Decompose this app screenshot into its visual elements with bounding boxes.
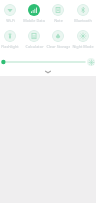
button[interactable]: Brightness slider [0,55,96,69]
button[interactable]: Bluetooth [71,4,95,23]
staticText: Bluetooth [74,18,92,23]
button[interactable]: Clear Storage [46,30,70,49]
staticText: Clear Storage [46,44,70,49]
staticText: Mobile Data [23,18,45,23]
button[interactable]: Expand quick settings [0,68,96,76]
staticText: Wi-Fi [6,18,15,23]
button[interactable]: Night Mode [71,30,95,49]
button[interactable]: Note [46,4,70,23]
button[interactable]: Wi-Fi [0,4,22,23]
staticText: Night Mode [72,44,94,49]
staticText: Calculator [25,44,44,49]
staticText: Note [54,18,63,23]
button[interactable]: Mobile Data [22,4,46,23]
button[interactable]: Calculator [22,30,46,49]
button[interactable]: Auto brightness [87,58,95,66]
button[interactable]: Flashlight [0,30,22,49]
staticText: Flashlight [1,44,19,49]
